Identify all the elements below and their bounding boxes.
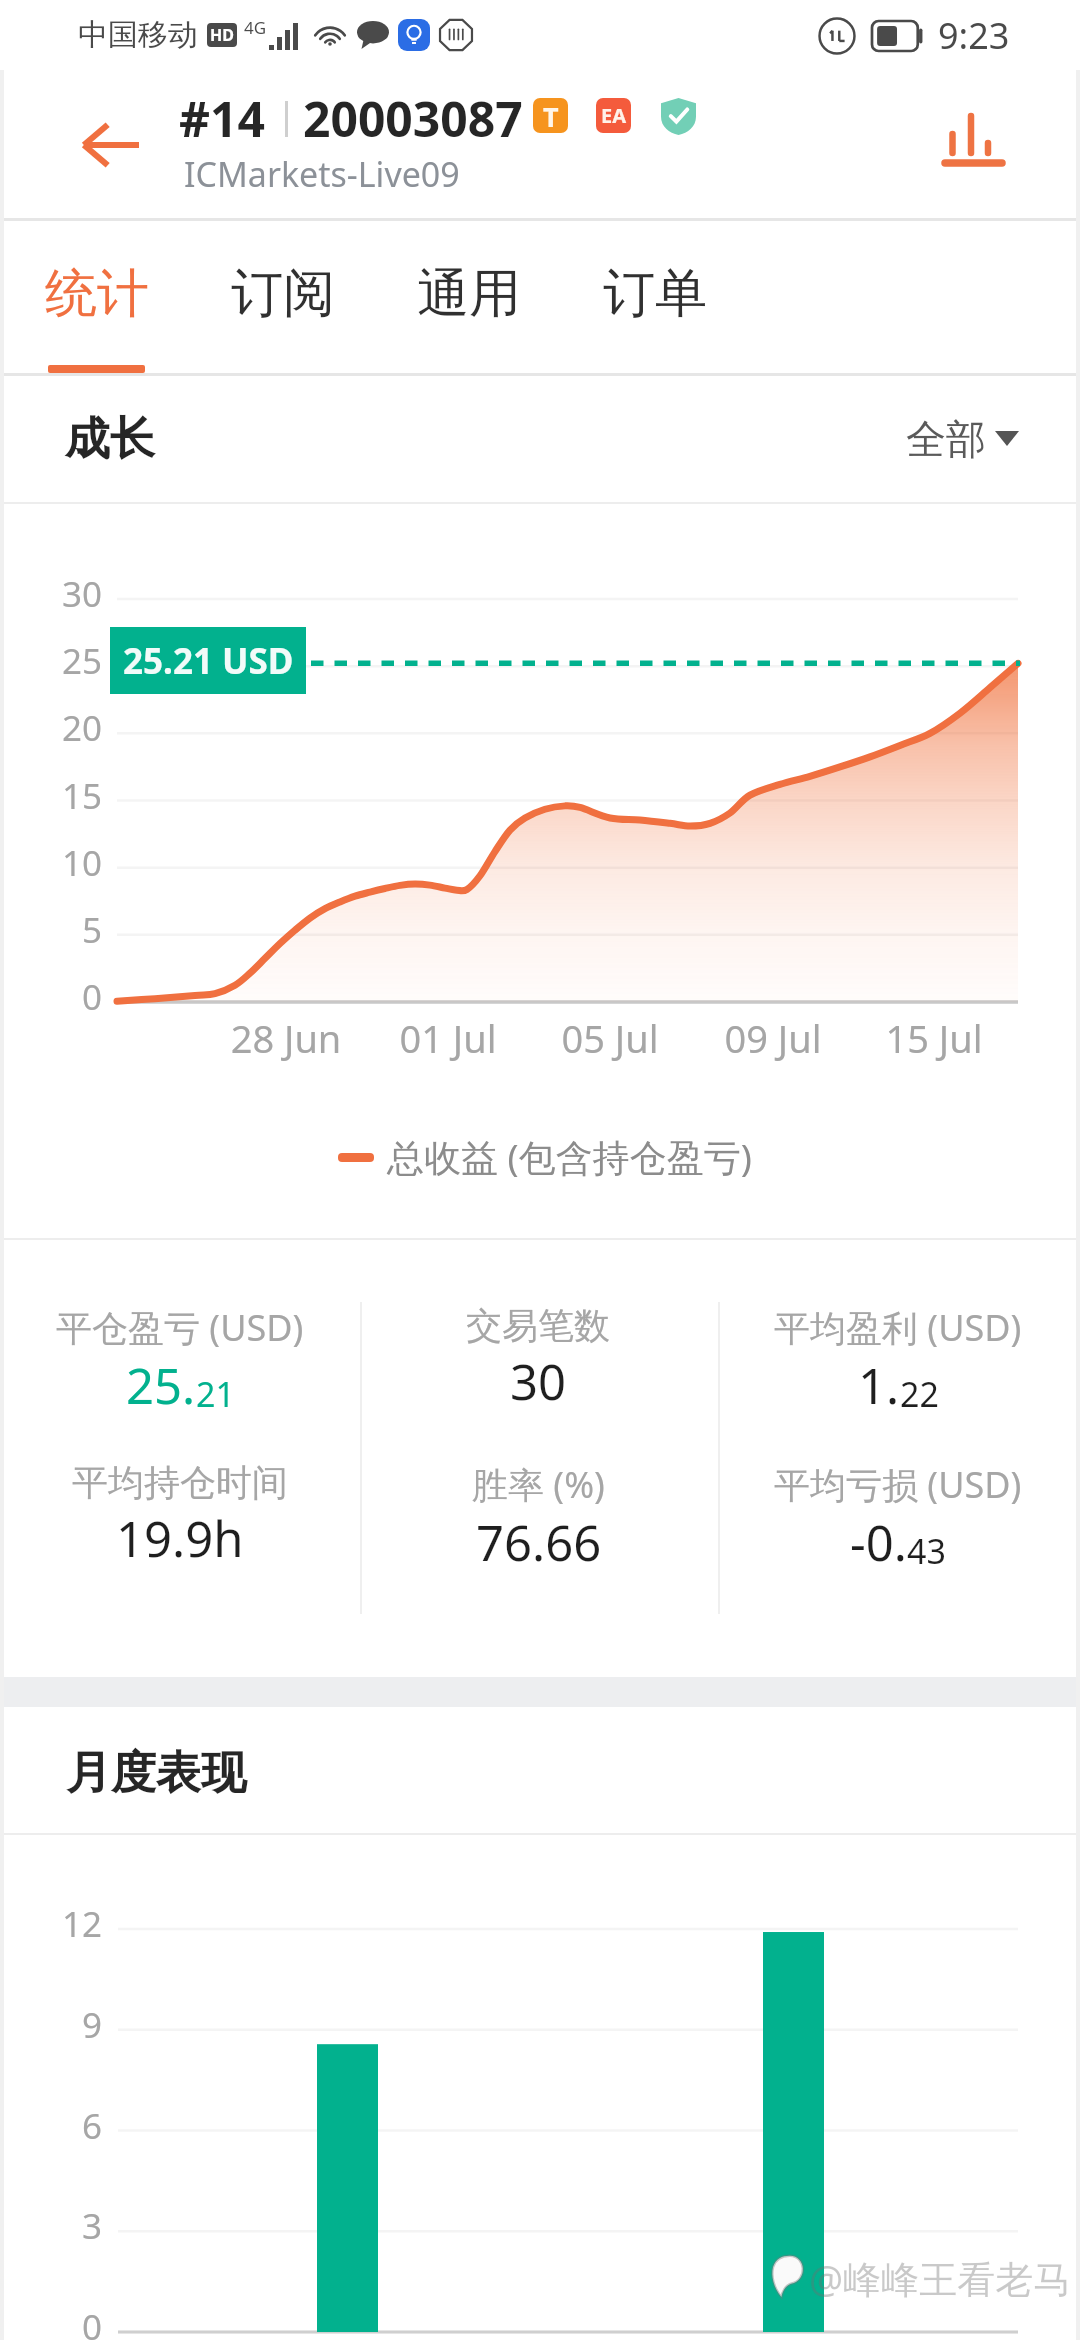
button[interactable]: 全部 — [890, 375, 1050, 502]
staticText: 25.21 USD — [123, 637, 294, 685]
staticText: 20003087 — [303, 86, 523, 151]
staticText: 0 — [4, 973, 102, 1021]
button[interactable]: 订单 — [562, 220, 748, 374]
staticText: 76.66 — [476, 1509, 602, 1576]
staticText: 成长 — [65, 411, 155, 468]
staticText: 统计 — [45, 261, 149, 327]
staticText: 订阅 — [231, 261, 335, 327]
staticText: 胜率 (%) — [472, 1460, 605, 1509]
staticText: 28 Jun — [196, 1012, 376, 1064]
button[interactable]: 订阅 — [190, 220, 376, 374]
staticText: T — [543, 98, 559, 133]
staticText: 9 — [4, 2001, 102, 2049]
staticText: 交易笔数 — [466, 1303, 610, 1348]
staticText: 20 — [4, 704, 102, 752]
staticText: 平均持仓时间 — [72, 1460, 288, 1505]
staticText: 中国移动 — [78, 16, 198, 54]
staticText: 1. — [858, 1352, 900, 1419]
staticText: -0. — [850, 1509, 907, 1576]
staticText: 05 Jul — [520, 1012, 700, 1064]
staticText: 平仓盈亏 (USD) — [56, 1303, 304, 1352]
button[interactable]: 统计 — [4, 220, 190, 374]
staticText: HD — [210, 24, 234, 46]
staticText: 6 — [4, 2102, 102, 2150]
staticText: 4G — [244, 16, 267, 39]
staticText: 总收益 (包含持仓盈亏) — [387, 1131, 752, 1182]
staticText: 10 — [4, 839, 102, 887]
staticText: 全部 — [906, 414, 986, 464]
button[interactable]: 平仓盈亏 (USD) — [2, 1303, 358, 1443]
staticText: @峰峰王看老马 — [809, 2252, 1072, 2304]
staticText: 30 — [4, 570, 102, 618]
staticText: 12 — [4, 1900, 102, 1948]
staticText: 01 Jul — [358, 1012, 538, 1064]
staticText: 0 — [4, 2303, 102, 2340]
button[interactable]: 胜率 (%) — [360, 1460, 716, 1600]
button[interactable]: Back — [40, 70, 180, 219]
staticText: 通用 — [417, 261, 521, 327]
staticText: 22 — [900, 1371, 939, 1417]
staticText: 30 — [510, 1348, 567, 1415]
staticText: ICMarkets-Live09 — [184, 151, 460, 197]
staticText: 15 — [4, 772, 102, 820]
staticText: 15 Jul — [844, 1012, 1024, 1064]
staticText: 3 — [4, 2202, 102, 2250]
button[interactable]: 平均盈利 (USD) — [720, 1303, 1076, 1443]
staticText: 09 Jul — [683, 1012, 863, 1064]
staticText: 月度表现 — [66, 1745, 246, 1802]
staticText: 21 — [196, 1371, 235, 1417]
button[interactable]: 平均亏损 (USD) — [720, 1460, 1076, 1600]
staticText: 订单 — [603, 261, 707, 327]
staticText: EA — [601, 102, 627, 129]
staticText: 9:23 — [938, 11, 1010, 60]
button[interactable]: Statistics — [902, 70, 1042, 219]
button[interactable]: 通用 — [376, 220, 562, 374]
staticText: 5 — [4, 906, 102, 954]
staticText: 25 — [4, 637, 102, 685]
button[interactable]: 交易笔数 — [360, 1303, 716, 1443]
staticText: 平均盈利 (USD) — [774, 1303, 1022, 1352]
staticText: 25. — [126, 1352, 196, 1419]
button[interactable]: 平均持仓时间 — [2, 1460, 358, 1600]
staticText: 43 — [907, 1528, 946, 1574]
staticText: 平均亏损 (USD) — [774, 1460, 1022, 1509]
staticText: #14 — [179, 86, 265, 151]
staticText: 19.9h — [116, 1505, 244, 1572]
